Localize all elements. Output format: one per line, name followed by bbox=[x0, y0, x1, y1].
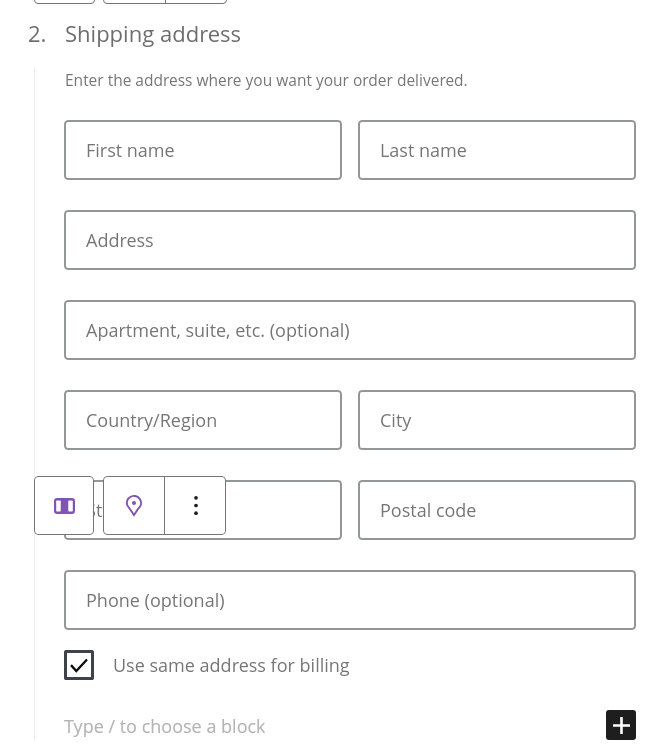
button[interactable]: More options bbox=[165, 476, 226, 535]
button[interactable]: Country/Region bbox=[64, 390, 342, 450]
button[interactable]: Add block bbox=[606, 710, 636, 740]
button[interactable]: Postal code bbox=[358, 480, 636, 540]
staticText: State bbox=[86, 498, 129, 523]
button[interactable]: Apartment, suite, etc. (optional) bbox=[64, 300, 636, 360]
staticText: Postal code bbox=[380, 498, 477, 523]
staticText: Type / to choose a block bbox=[64, 714, 266, 739]
staticText: Apartment, suite, etc. (optional) bbox=[86, 318, 350, 343]
button[interactable]: Columns block type bbox=[34, 476, 94, 535]
button[interactable]: Use same address for billing bbox=[64, 650, 350, 680]
staticText: Address bbox=[86, 228, 154, 253]
staticText: Use same address for billing bbox=[113, 653, 350, 678]
staticText: Country/Region bbox=[86, 408, 218, 433]
button[interactable]: Address / location bbox=[103, 476, 164, 535]
staticText: City bbox=[380, 408, 412, 433]
staticText: Enter the address where you want your or… bbox=[65, 69, 468, 90]
button[interactable]: First name bbox=[64, 120, 342, 180]
button[interactable]: Phone (optional) bbox=[64, 570, 636, 630]
staticText: Shipping address bbox=[65, 18, 242, 48]
button[interactable]: Address bbox=[64, 210, 636, 270]
button[interactable]: Last name bbox=[358, 120, 636, 180]
staticText: Last name bbox=[380, 138, 467, 163]
button[interactable]: State bbox=[64, 480, 342, 540]
staticText: Phone (optional) bbox=[86, 588, 225, 613]
staticText: First name bbox=[86, 138, 175, 163]
staticText: 2. bbox=[28, 18, 47, 48]
button[interactable]: City bbox=[358, 390, 636, 450]
